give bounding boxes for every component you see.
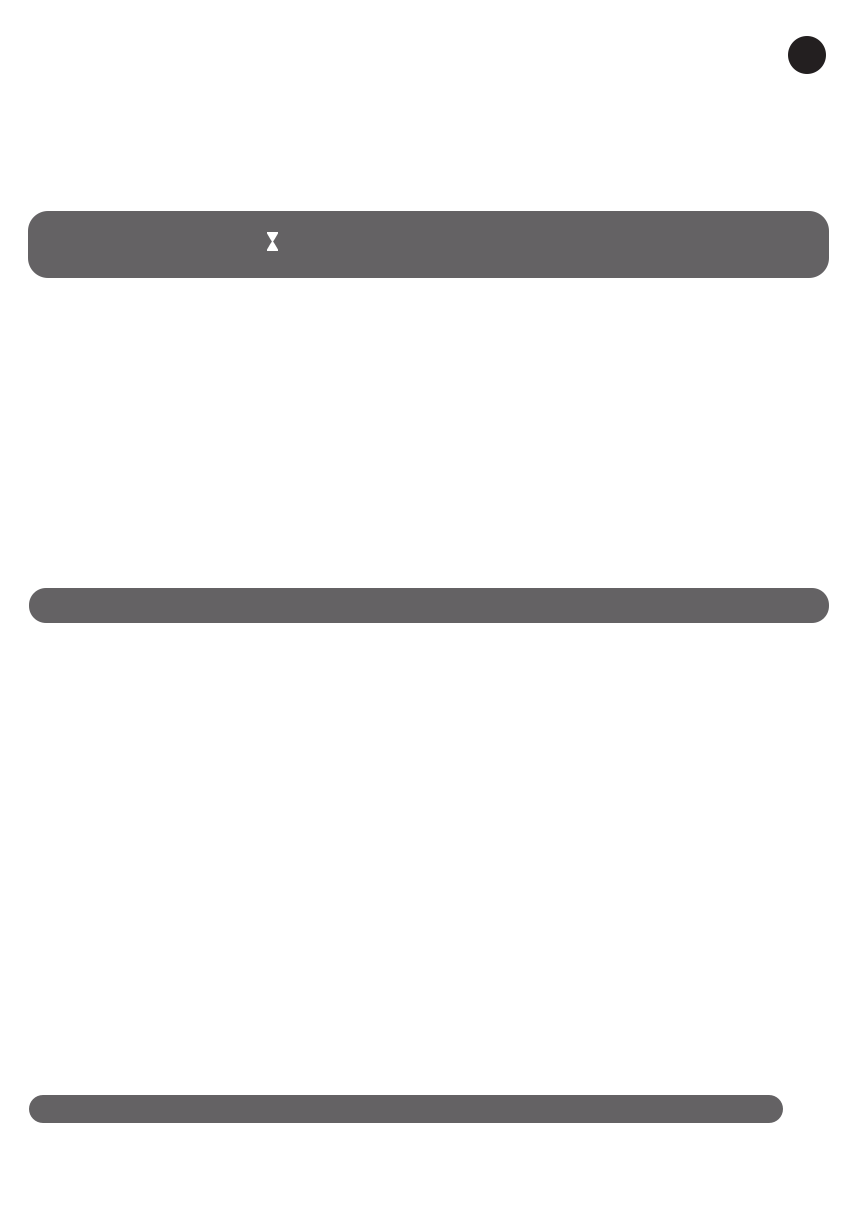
button[interactable]: Loading message [28, 211, 829, 278]
button[interactable]: Account [788, 36, 826, 74]
